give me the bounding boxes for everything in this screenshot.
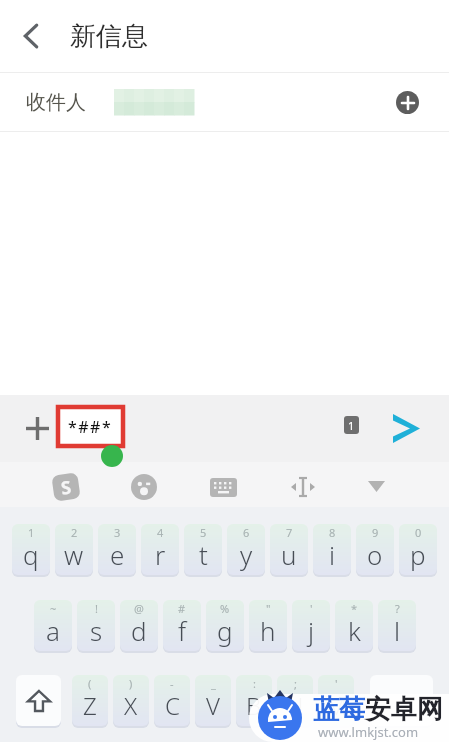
staticText: u [281, 537, 297, 572]
button[interactable]: - [154, 675, 190, 726]
button[interactable]: " [249, 600, 287, 651]
button[interactable]: 收件人 [0, 73, 449, 131]
staticText: : [253, 676, 256, 691]
staticText: www.lmkjst.com [318, 723, 419, 741]
button[interactable]: ' [292, 600, 330, 651]
staticText: j [308, 613, 315, 648]
staticText: ' [310, 601, 313, 616]
staticText: 新信息 [70, 20, 148, 53]
button[interactable]: ) [113, 675, 149, 726]
staticText: a [46, 613, 60, 648]
staticText: f [178, 613, 187, 648]
staticText: " [266, 601, 271, 616]
staticText: l [394, 613, 401, 648]
staticText: 3 [114, 525, 121, 540]
staticText: k [348, 613, 361, 648]
button[interactable]: 0 [399, 524, 437, 575]
button[interactable] [16, 675, 61, 726]
staticText: s [90, 613, 103, 648]
staticText: 4 [157, 525, 164, 540]
button[interactable]: 4 [141, 524, 179, 575]
staticText: 1 [348, 418, 355, 433]
staticText: q [23, 537, 39, 572]
staticText: p [410, 537, 426, 572]
staticText: y [240, 537, 253, 572]
staticText: d [131, 613, 147, 648]
staticText: 9 [372, 525, 379, 540]
button[interactable]: ( [72, 675, 108, 726]
button[interactable]: 5 [184, 524, 222, 575]
button[interactable]: * [335, 600, 373, 651]
staticText: g [217, 613, 233, 648]
staticText: ! [95, 601, 98, 616]
staticText: t [199, 537, 208, 572]
staticText: e [110, 537, 125, 572]
button[interactable]: # [163, 600, 201, 651]
button[interactable]: 1 [12, 524, 50, 575]
staticText: ) [129, 676, 133, 691]
staticText: _ [211, 676, 216, 691]
button[interactable]: 3 [98, 524, 136, 575]
staticText: *##* [68, 416, 113, 438]
button[interactable] [391, 413, 420, 444]
staticText: B [246, 689, 262, 722]
staticText: 7 [286, 525, 293, 540]
staticText: C [165, 689, 180, 722]
button[interactable] [396, 91, 419, 114]
staticText: V [206, 689, 220, 722]
button[interactable]: 8 [313, 524, 351, 575]
staticText: @ [134, 601, 144, 616]
button[interactable]: @ [120, 600, 158, 651]
staticText: w [64, 537, 84, 572]
staticText: 收件人 [26, 90, 86, 115]
staticText: 5 [200, 525, 207, 540]
button[interactable]: ? [378, 600, 416, 651]
button[interactable] [368, 481, 385, 492]
button[interactable] [18, 23, 44, 49]
staticText: % [220, 601, 230, 616]
staticText: ; [294, 676, 297, 691]
button[interactable]: 6 [227, 524, 265, 575]
staticText: 蓝莓安卓网 [313, 693, 443, 726]
staticText: 2 [71, 525, 78, 540]
staticText: i [329, 537, 336, 572]
staticText: ' [335, 676, 338, 691]
staticText: M [326, 689, 347, 722]
staticText: o [367, 537, 383, 572]
staticText: h [260, 613, 276, 648]
button[interactable]: 7 [270, 524, 308, 575]
button[interactable]: : [236, 675, 272, 726]
button[interactable]: 2 [55, 524, 93, 575]
staticText: - [170, 676, 174, 691]
button[interactable]: ! [77, 600, 115, 651]
button[interactable]: ~ [34, 600, 72, 651]
staticText: N [286, 689, 304, 722]
staticText: # [178, 601, 186, 616]
button[interactable]: S [51, 472, 81, 502]
staticText: 1 [28, 525, 35, 540]
staticText: X [124, 689, 138, 722]
staticText: ( [88, 676, 92, 691]
button[interactable]: % [206, 600, 244, 651]
button[interactable] [131, 474, 157, 500]
staticText: 8 [329, 525, 336, 540]
staticText: * [351, 601, 358, 616]
staticText: 6 [243, 525, 250, 540]
staticText: ? [395, 601, 400, 616]
button[interactable] [370, 675, 433, 726]
staticText: S [59, 474, 73, 500]
button[interactable]: 9 [356, 524, 394, 575]
staticText: Z [83, 689, 97, 722]
staticText: r [155, 537, 166, 572]
staticText: ~ [50, 601, 57, 616]
button[interactable] [26, 417, 49, 440]
staticText: 0 [415, 525, 422, 540]
button[interactable]: ' [318, 675, 354, 726]
button[interactable] [291, 476, 315, 498]
button[interactable] [210, 478, 237, 497]
button[interactable]: ; [277, 675, 313, 726]
button[interactable]: _ [195, 675, 231, 726]
